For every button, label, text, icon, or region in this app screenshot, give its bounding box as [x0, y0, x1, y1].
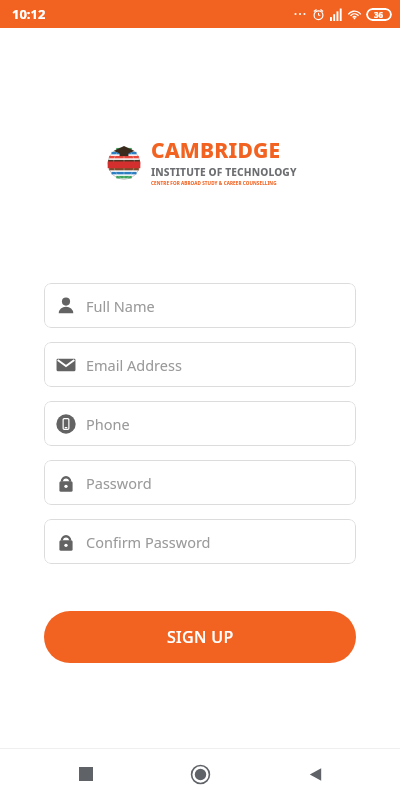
staticText: SIGN UP	[167, 626, 234, 648]
button[interactable]: Home	[171, 748, 229, 800]
staticText: Email Address	[86, 355, 182, 375]
button[interactable]: Email Address	[44, 342, 356, 387]
button[interactable]: SIGN UP	[44, 611, 356, 663]
button[interactable]: Full Name	[44, 283, 356, 328]
staticText: Phone	[86, 414, 130, 434]
staticText: Confirm Password	[86, 532, 211, 552]
staticText: 10:12	[12, 5, 46, 23]
button[interactable]: Password	[44, 460, 356, 505]
staticText: CENTRE FOR ABROAD STUDY & CAREER COUNSEL…	[151, 180, 277, 186]
staticText: Full Name	[86, 296, 155, 316]
button[interactable]: Confirm Password	[44, 519, 356, 564]
staticText: 36	[374, 9, 384, 20]
staticText: Password	[86, 473, 152, 493]
staticText: INSTITUTE OF TECHNOLOGY	[151, 165, 297, 179]
button[interactable]: Phone	[44, 401, 356, 446]
button[interactable]: Recent apps	[57, 748, 115, 800]
button[interactable]: Back	[286, 748, 344, 800]
staticText: CAMBRIDGE	[151, 136, 281, 165]
